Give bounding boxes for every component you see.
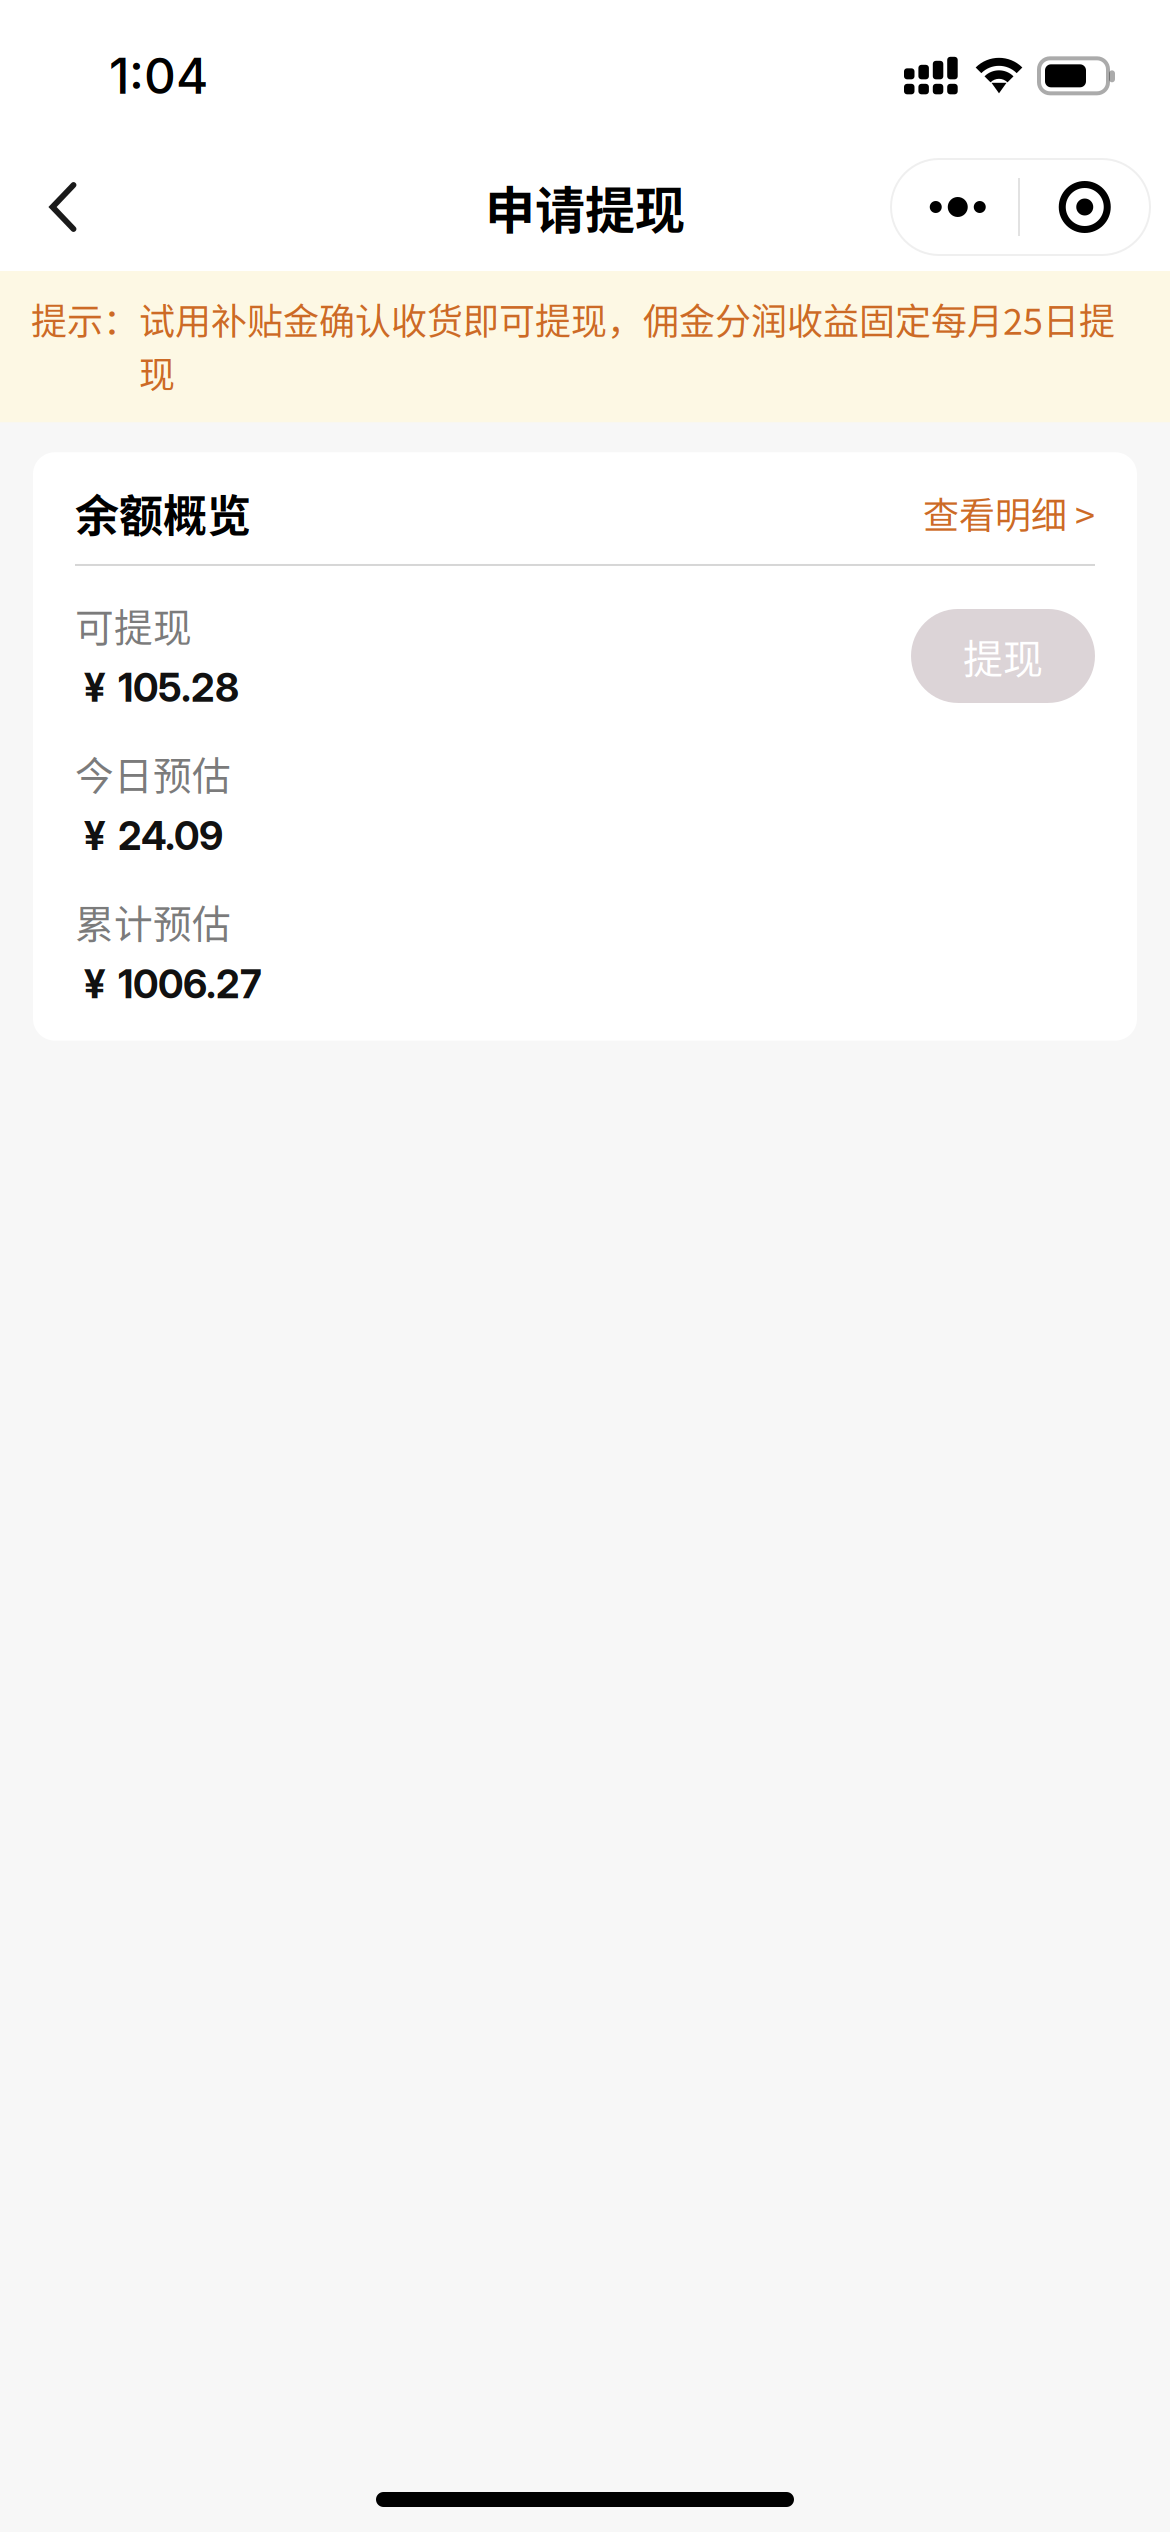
staticText: 累计预估: [75, 893, 231, 949]
staticText: ¥ 24.09: [84, 812, 223, 859]
staticText: ¥ 105.28: [84, 664, 239, 711]
staticText: 查看明细 >: [923, 487, 1095, 539]
staticText: 提现: [963, 627, 1043, 685]
button[interactable]: Back: [8, 155, 118, 259]
staticText: 今日预估: [75, 745, 231, 801]
staticText: 余额概览: [75, 481, 251, 545]
staticText: 申请提现: [485, 171, 685, 243]
button[interactable]: Close mini program: [1020, 159, 1150, 255]
staticText: 试用补贴金确认收货即可提现，佣金分润收益固定每月25日提现: [139, 293, 1115, 398]
staticText: 提示：: [31, 293, 139, 345]
staticText: ¥ 1006.27: [84, 960, 262, 1008]
button[interactable]: 提现: [911, 609, 1095, 703]
staticText: 可提现: [75, 597, 192, 653]
button[interactable]: More options: [891, 159, 1018, 255]
staticText: 1:04: [109, 46, 208, 106]
button[interactable]: 查看明细 >: [923, 487, 1095, 539]
